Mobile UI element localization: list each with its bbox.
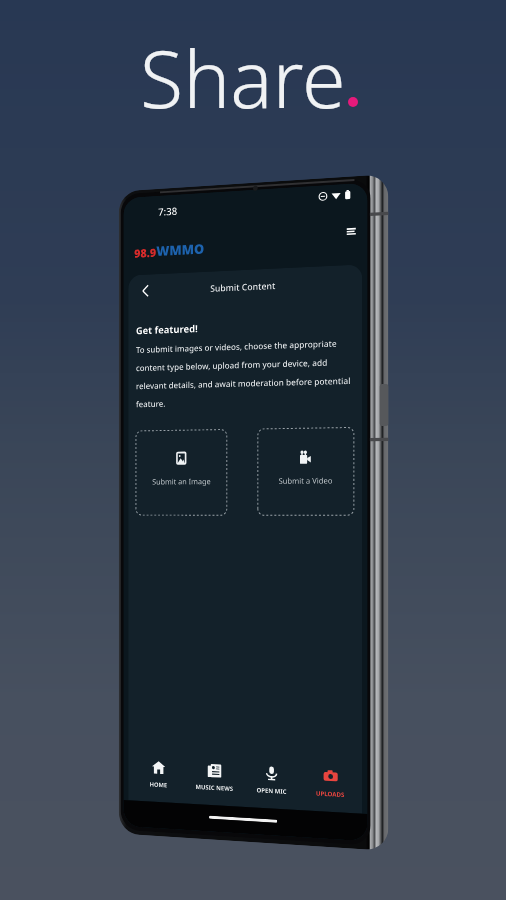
staticText: Submit a Video [278, 475, 333, 486]
staticText: Get featured! [136, 321, 198, 337]
button[interactable]: MUSIC NEWS [186, 748, 243, 807]
staticText: Submit Content [210, 279, 275, 294]
button[interactable]: Submit a Video [258, 427, 354, 515]
button[interactable]: HOME [131, 745, 186, 803]
staticText: UPLOADS [316, 789, 345, 799]
button[interactable]: Menu [343, 222, 360, 240]
button[interactable]: Back [133, 277, 158, 304]
staticText: Share [140, 24, 346, 132]
staticText: To submit images or videos, choose the a… [136, 337, 354, 410]
staticText: MUSIC NEWS [195, 783, 234, 793]
staticText: Submit an Image [152, 476, 211, 486]
staticText: OPEN MIC [257, 786, 287, 796]
staticText: 7:38 [158, 204, 177, 219]
staticText: WMMO [156, 240, 205, 260]
button[interactable]: Submit an Image [136, 429, 227, 515]
staticText: HOME [150, 780, 168, 789]
button[interactable]: OPEN MIC [243, 751, 301, 810]
staticText: 98.9 [134, 245, 156, 261]
button[interactable]: UPLOADS [301, 753, 360, 814]
